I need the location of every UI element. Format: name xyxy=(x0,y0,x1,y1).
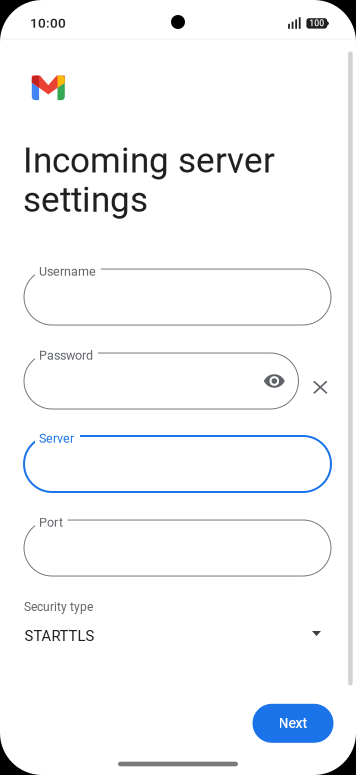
staticText: Server xyxy=(39,431,74,446)
staticText: settings xyxy=(23,179,148,220)
button[interactable]: Security type xyxy=(24,600,332,660)
staticText: 10:00 xyxy=(30,15,66,31)
button[interactable]: Port xyxy=(24,520,331,576)
button[interactable]: Clear password xyxy=(304,371,337,403)
staticText: Security type xyxy=(24,600,93,614)
button[interactable]: Next xyxy=(252,704,333,743)
staticText: 100 xyxy=(309,18,324,28)
button[interactable]: Username xyxy=(24,269,331,325)
staticText: Next xyxy=(278,715,307,731)
staticText: Username xyxy=(39,264,96,279)
staticText: STARTTLS xyxy=(24,627,94,645)
button[interactable]: Server xyxy=(24,436,331,492)
button[interactable]: Password xyxy=(24,353,298,409)
staticText: Port xyxy=(39,515,63,530)
staticText: Password xyxy=(39,348,93,363)
staticText: Incoming server xyxy=(23,140,275,181)
